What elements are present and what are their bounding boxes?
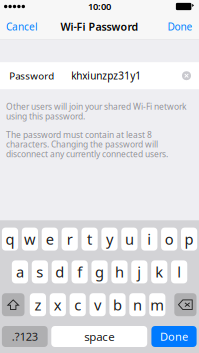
staticText: p bbox=[185, 229, 194, 249]
button[interactable]: z bbox=[30, 293, 46, 316]
button[interactable]: f bbox=[71, 260, 88, 283]
staticText: s bbox=[36, 262, 43, 282]
button[interactable]: Done bbox=[151, 326, 197, 347]
staticText: l bbox=[177, 262, 181, 282]
staticText: using this password. bbox=[6, 110, 85, 122]
button[interactable]: q bbox=[2, 228, 18, 251]
button[interactable]: v bbox=[89, 293, 106, 316]
button[interactable]: space bbox=[51, 326, 147, 347]
staticText: h bbox=[115, 262, 124, 282]
staticText: j bbox=[137, 262, 141, 282]
staticText: k bbox=[155, 262, 163, 282]
button[interactable]: p bbox=[181, 228, 197, 251]
button[interactable]: w bbox=[22, 228, 38, 251]
button[interactable]: m bbox=[149, 293, 165, 316]
staticText: Wi-Fi Password bbox=[60, 19, 138, 34]
staticText: The password must contain at least 8 bbox=[6, 129, 152, 140]
staticText: n bbox=[133, 295, 142, 315]
staticText: i bbox=[147, 229, 151, 249]
button[interactable]: x bbox=[50, 293, 66, 316]
button[interactable]: Shift bbox=[2, 293, 24, 316]
button[interactable]: Cancel bbox=[0, 13, 46, 40]
staticText: d bbox=[55, 262, 64, 282]
button[interactable]: t bbox=[81, 228, 98, 251]
staticText: r bbox=[67, 229, 73, 249]
button[interactable]: u bbox=[121, 228, 137, 251]
staticText: Done bbox=[160, 329, 188, 344]
staticText: u bbox=[125, 229, 134, 249]
staticText: v bbox=[94, 295, 101, 315]
button[interactable]: s bbox=[32, 260, 48, 283]
button[interactable]: a bbox=[12, 260, 28, 283]
button[interactable]: b bbox=[109, 293, 126, 316]
staticText: x bbox=[54, 295, 62, 315]
staticText: g bbox=[95, 262, 104, 282]
button[interactable]: Done bbox=[159, 13, 199, 40]
button[interactable]: i bbox=[141, 228, 157, 251]
button[interactable]: Delete bbox=[174, 293, 196, 316]
staticText: f bbox=[77, 262, 82, 282]
button[interactable]: o bbox=[161, 228, 177, 251]
staticText: c bbox=[74, 295, 81, 315]
button[interactable]: e bbox=[42, 228, 58, 251]
button[interactable]: Password bbox=[0, 62, 199, 89]
staticText: a bbox=[16, 262, 24, 282]
staticText: w bbox=[24, 229, 36, 249]
staticText: z bbox=[34, 295, 41, 315]
staticText: .?123 bbox=[12, 329, 38, 344]
staticText: q bbox=[5, 229, 14, 249]
staticText: Cancel bbox=[6, 20, 38, 33]
staticText: Other users will join your shared Wi-Fi … bbox=[6, 101, 187, 112]
staticText: khxiunzpz31y1 bbox=[71, 69, 141, 82]
staticText: 10:00 bbox=[88, 0, 111, 13]
button[interactable]: n bbox=[129, 293, 145, 316]
staticText: Password bbox=[9, 69, 54, 82]
button[interactable]: .?123 bbox=[2, 326, 48, 347]
staticText: characters. Changing the password will bbox=[6, 139, 158, 150]
staticText: y bbox=[106, 229, 113, 249]
staticText: m bbox=[150, 295, 164, 315]
button[interactable]: k bbox=[151, 260, 167, 283]
button[interactable]: c bbox=[70, 293, 86, 316]
staticText: b bbox=[113, 295, 122, 315]
staticText: Done bbox=[167, 20, 192, 33]
button[interactable]: y bbox=[101, 228, 118, 251]
button[interactable]: h bbox=[111, 260, 127, 283]
button[interactable]: l bbox=[171, 260, 187, 283]
staticText: space bbox=[84, 329, 114, 344]
button[interactable]: r bbox=[62, 228, 78, 251]
button[interactable]: g bbox=[91, 260, 108, 283]
staticText: e bbox=[46, 229, 54, 249]
staticText: o bbox=[165, 229, 174, 249]
staticText: disconnect any currently connected users… bbox=[6, 148, 168, 160]
button[interactable]: d bbox=[52, 260, 68, 283]
button[interactable]: j bbox=[131, 260, 147, 283]
staticText: t bbox=[87, 229, 92, 249]
